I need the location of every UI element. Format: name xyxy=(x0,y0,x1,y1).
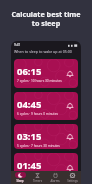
button[interactable]: 04:45 xyxy=(14,92,78,120)
button[interactable]: Settings xyxy=(64,172,80,183)
staticText: 6 cycles · 9 hours 0 minutes xyxy=(17,112,59,116)
staticText: Alarms xyxy=(50,179,60,183)
staticText: 9:41 xyxy=(14,43,21,47)
staticText: Calculate best time to sleep xyxy=(11,9,81,29)
button[interactable]: 03:15 xyxy=(14,124,78,149)
button[interactable]: 01:45 xyxy=(14,153,78,182)
staticText: Settings xyxy=(67,179,78,183)
staticText: 4 cycles · 6 hours 0 minutes xyxy=(17,173,59,177)
button[interactable]: Set alarm xyxy=(66,164,74,172)
staticText: 04:45 xyxy=(17,98,42,111)
button[interactable]: Timers xyxy=(29,172,45,183)
staticText: 03:15 xyxy=(17,130,42,143)
staticText: Timers xyxy=(33,179,42,183)
button[interactable]: Sleep xyxy=(12,172,28,183)
staticText: 01:45 xyxy=(17,159,42,172)
button[interactable]: Set alarm xyxy=(66,102,74,110)
staticText: 06:15 xyxy=(17,65,42,78)
staticText: 7 cycles · 10 hours 30 minutes xyxy=(17,79,62,83)
button[interactable]: Set alarm xyxy=(66,70,74,78)
button[interactable]: 06:15 xyxy=(14,59,78,88)
staticText: 5 cycles · 7 hours 30 minutes xyxy=(17,144,60,148)
button[interactable]: Set alarm xyxy=(66,133,74,141)
staticText: Sleep xyxy=(16,179,24,183)
button[interactable]: Alarms xyxy=(47,172,63,183)
staticText: When to sleep to wake up at 05:00 xyxy=(14,49,72,54)
